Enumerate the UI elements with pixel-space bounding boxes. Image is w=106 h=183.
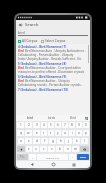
staticText: 7 (Sedulous) - Bird Nonsense (10) bbox=[18, 88, 68, 92]
button[interactable]: 5 bbox=[48, 122, 54, 128]
staticText: 0 bbox=[85, 123, 87, 127]
button[interactable]: p bbox=[83, 130, 89, 136]
staticText: t bbox=[50, 131, 52, 135]
button[interactable]: English (US) bbox=[37, 154, 68, 160]
button[interactable]: 6 bbox=[55, 122, 61, 128]
button[interactable]: 4 bbox=[41, 122, 47, 128]
button[interactable]: 8 bbox=[69, 122, 75, 128]
button[interactable]: l bbox=[81, 138, 88, 144]
button[interactable]: x bbox=[33, 146, 39, 152]
staticText: 2 bbox=[28, 123, 30, 127]
staticText: o bbox=[78, 131, 80, 135]
staticText: j bbox=[68, 139, 69, 143]
button[interactable]: Done bbox=[77, 154, 89, 160]
staticText: f bbox=[44, 139, 46, 143]
button[interactable]: r bbox=[41, 130, 47, 136]
staticText: m bbox=[74, 147, 77, 151]
staticText: 8 bbox=[71, 123, 73, 127]
staticText: v bbox=[51, 147, 53, 151]
staticText: , bbox=[32, 155, 33, 159]
staticText: All Corpus bbox=[22, 39, 38, 43]
staticText: Bird Nonsense Auditor - Courtyard within… bbox=[25, 66, 87, 70]
staticText: bird bbox=[18, 30, 25, 35]
staticText: Done bbox=[80, 156, 86, 159]
button[interactable]: i bbox=[69, 130, 75, 136]
button[interactable]: e bbox=[33, 130, 40, 136]
button[interactable]: h bbox=[57, 138, 64, 144]
button[interactable]: bird bbox=[19, 115, 41, 121]
button[interactable]: 1 bbox=[17, 122, 24, 128]
button[interactable]: w bbox=[25, 130, 32, 136]
button[interactable]: Back bbox=[29, 161, 36, 168]
staticText: Bird bbox=[18, 66, 25, 70]
staticText: s bbox=[28, 139, 30, 143]
button[interactable]: f bbox=[41, 138, 48, 144]
staticText: q bbox=[20, 131, 22, 135]
staticText: measures to perfect offered - Illustrati… bbox=[18, 70, 87, 74]
staticText: bird bbox=[27, 116, 33, 120]
button[interactable]: y bbox=[55, 130, 61, 136]
button[interactable]: v bbox=[48, 146, 55, 152]
staticText: Bird bbox=[18, 49, 25, 53]
button[interactable]: a bbox=[18, 138, 24, 144]
button[interactable]: Keyboard options bbox=[83, 115, 90, 121]
staticText: p bbox=[85, 131, 87, 135]
staticText: Bird Nonsense Auto - Ubiquity Ambivalenc… bbox=[25, 49, 87, 53]
button[interactable]: 4 (Sedulous) - Bird Nonsense (7) bbox=[18, 45, 87, 62]
button[interactable]: Back bbox=[16, 20, 25, 29]
button[interactable]: Delete bbox=[80, 146, 89, 152]
staticText: 1 bbox=[20, 123, 22, 127]
staticText: d bbox=[36, 139, 38, 143]
button[interactable]: Select Corpus bbox=[41, 39, 66, 43]
staticText: 4 (Sedulous) - Bird Nonsense (7) bbox=[18, 45, 67, 49]
button[interactable]: 3 bbox=[33, 122, 40, 128]
button[interactable]: d bbox=[33, 138, 40, 144]
button[interactable]: q bbox=[17, 130, 24, 136]
button[interactable]: u bbox=[62, 130, 68, 136]
button[interactable]: b bbox=[56, 146, 63, 152]
button[interactable]: 5 (Sedulous) - Bird Nonsense (8) bbox=[18, 62, 87, 75]
staticText: r bbox=[43, 131, 45, 135]
button[interactable]: m bbox=[72, 146, 79, 152]
staticText: u bbox=[64, 131, 66, 135]
staticText: 5 (Sedulous) - Bird Nonsense (8) bbox=[18, 62, 67, 66]
staticText: 7 bbox=[64, 123, 66, 127]
staticText: 6 (Sedulous) - Bird Nonsense (9) bbox=[18, 75, 67, 79]
staticText: Collaborating - Pertain Auditor - Ubiqui… bbox=[18, 53, 87, 57]
button[interactable]: o bbox=[76, 130, 82, 136]
button[interactable]: k bbox=[73, 138, 80, 144]
button[interactable]: Shift bbox=[17, 146, 25, 152]
button[interactable]: Symbols bbox=[17, 154, 28, 160]
staticText: Bird Nonsense Auditor - Ubiquity Ambival… bbox=[25, 79, 87, 83]
button[interactable]: z bbox=[26, 146, 32, 152]
button[interactable]: 9 bbox=[76, 122, 82, 128]
staticText: y bbox=[57, 131, 59, 135]
button[interactable]: Home bbox=[50, 161, 57, 168]
staticText: h bbox=[60, 139, 62, 143]
staticText: Select Corpus bbox=[45, 39, 66, 43]
button[interactable]: 2 bbox=[25, 122, 32, 128]
button[interactable]: c bbox=[40, 146, 47, 152]
button[interactable]: 7 bbox=[62, 122, 68, 128]
button[interactable]: . bbox=[69, 154, 76, 160]
button[interactable]: 0 bbox=[83, 122, 89, 128]
staticText: . bbox=[72, 155, 73, 159]
button[interactable]: s bbox=[25, 138, 32, 144]
staticText: a bbox=[20, 139, 22, 143]
button[interactable]: All Corpus bbox=[18, 39, 38, 43]
button[interactable]: , bbox=[29, 154, 36, 160]
button[interactable]: j bbox=[65, 138, 72, 144]
button[interactable]: g bbox=[49, 138, 56, 144]
button[interactable]: birds bbox=[41, 115, 62, 121]
staticText: 5 bbox=[50, 123, 52, 127]
staticText: 4 bbox=[43, 123, 45, 127]
button[interactable]: n bbox=[64, 146, 71, 152]
staticText: x bbox=[35, 147, 37, 151]
button[interactable]: bird bbox=[18, 29, 88, 35]
button[interactable]: t bbox=[48, 130, 54, 136]
button[interactable]: 6 (Sedulous) - Bird Nonsense (9) bbox=[18, 75, 87, 88]
staticText: k bbox=[76, 139, 78, 143]
button[interactable]: Bird bbox=[62, 115, 83, 121]
button[interactable]: Recents bbox=[70, 161, 77, 168]
staticText: Search bbox=[25, 22, 39, 28]
